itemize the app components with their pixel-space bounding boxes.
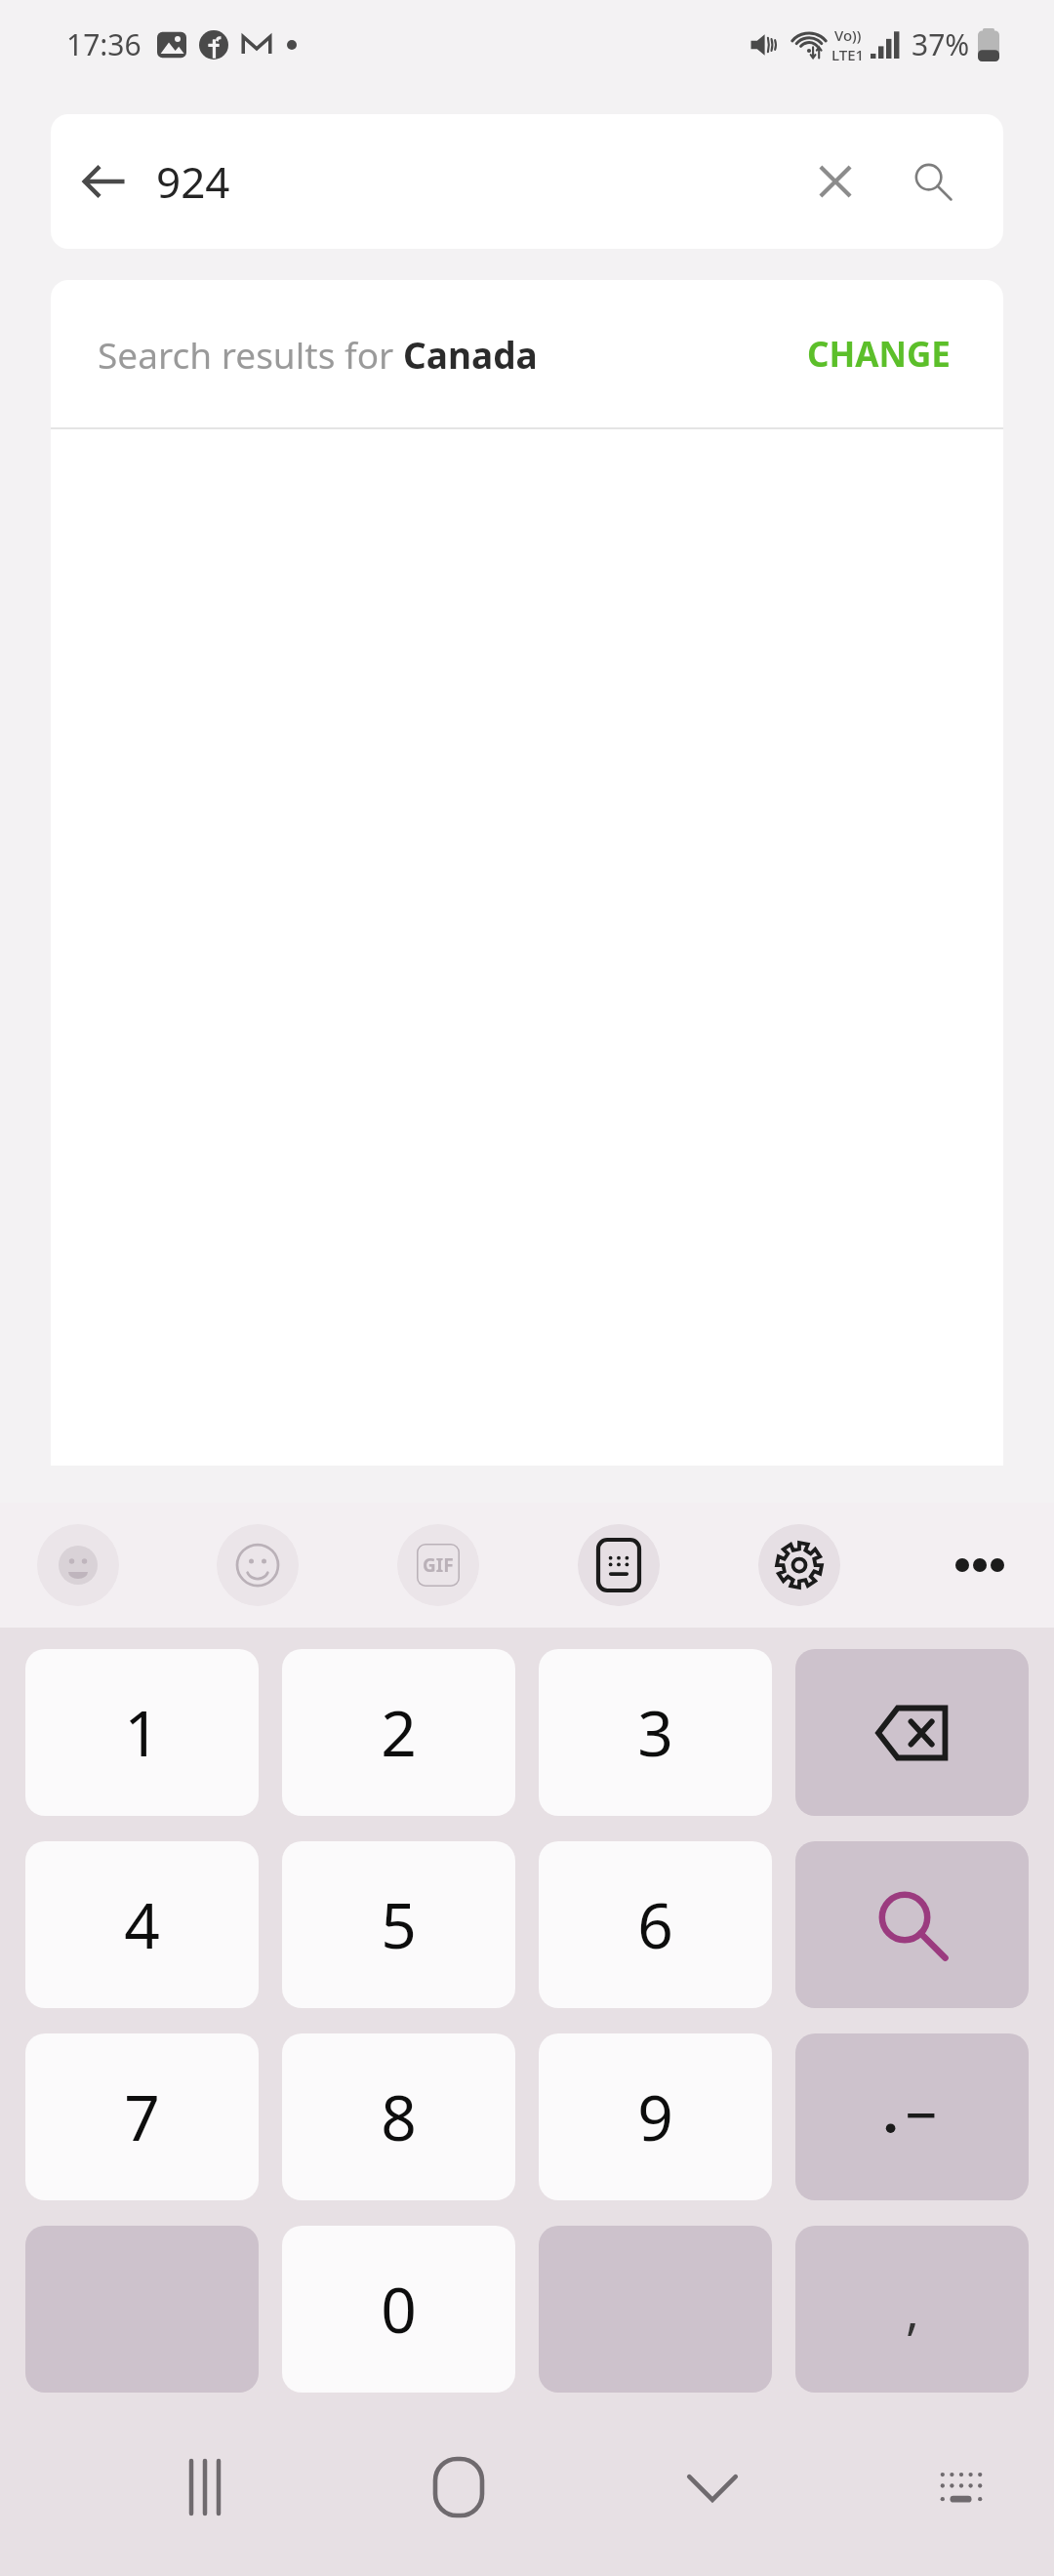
staticText: Canada: [403, 330, 538, 379]
button[interactable]: Keyboard settings: [758, 1524, 840, 1606]
button[interactable]: 7: [25, 2033, 259, 2200]
button[interactable]: Stickers: [37, 1524, 119, 1606]
button[interactable]: Comma: [795, 2226, 1029, 2393]
staticText: 37%: [912, 24, 970, 64]
button[interactable]: 4: [25, 1841, 259, 2008]
button[interactable]: 9: [539, 2033, 772, 2200]
staticText: 2: [381, 1690, 417, 1775]
staticText: 924: [156, 152, 787, 211]
button[interactable]: 6: [539, 1841, 772, 2008]
button[interactable]: 2: [282, 1649, 515, 1816]
button[interactable]: 1: [25, 1649, 259, 1816]
staticText: 17:36: [66, 24, 142, 64]
staticText: 0: [381, 2267, 417, 2352]
button[interactable]: Period and dash: [795, 2033, 1029, 2200]
button[interactable]: Search: [884, 133, 982, 230]
button[interactable]: 5: [282, 1841, 515, 2008]
button[interactable]: 8: [282, 2033, 515, 2200]
button[interactable]: 0: [282, 2226, 515, 2393]
button[interactable]: Switch keyboard: [908, 2434, 1015, 2541]
staticText: 4: [124, 1882, 160, 1967]
button[interactable]: Recent apps: [146, 2429, 263, 2546]
staticText: 7: [124, 2074, 160, 2159]
button[interactable]: More options: [939, 1524, 1021, 1606]
staticText: 3: [637, 1690, 673, 1775]
staticText: 9: [637, 2074, 673, 2159]
button[interactable]: GIF: [397, 1524, 479, 1606]
button[interactable]: Home: [400, 2429, 517, 2546]
staticText: GIF: [423, 1552, 454, 1578]
staticText: 5: [381, 1882, 417, 1967]
button[interactable]: CHANGE: [801, 321, 956, 387]
staticText: LTE1: [831, 45, 865, 64]
staticText: CHANGE: [807, 331, 951, 378]
button[interactable]: Clear text: [787, 133, 884, 230]
staticText: Search results for: [98, 330, 403, 379]
staticText: Vo)): [834, 25, 862, 45]
button[interactable]: Hide keyboard: [654, 2429, 771, 2546]
staticText: 1: [124, 1690, 160, 1775]
button[interactable]: Back: [51, 129, 156, 234]
button[interactable]: 3: [539, 1649, 772, 1816]
button[interactable]: Keyboard modes: [578, 1524, 660, 1606]
button[interactable]: Emoji: [217, 1524, 299, 1606]
staticText: 6: [637, 1882, 673, 1967]
staticText: 8: [381, 2074, 417, 2159]
button[interactable]: Search: [795, 1841, 1029, 2008]
button[interactable]: Backspace: [795, 1649, 1029, 1816]
staticText: ,: [906, 2274, 919, 2344]
button[interactable]: Blank: [25, 2226, 259, 2393]
